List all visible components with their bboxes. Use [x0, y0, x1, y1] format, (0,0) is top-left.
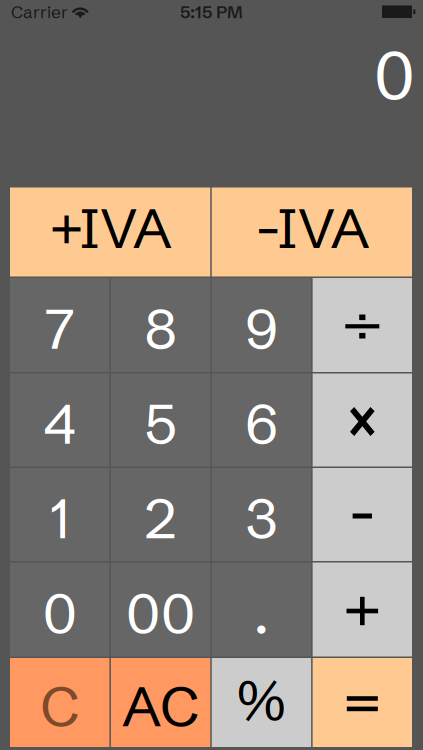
staticText: 4 [43, 389, 76, 458]
button[interactable]: % [212, 658, 311, 747]
button[interactable]: 5 [111, 373, 210, 466]
staticText: 9 [245, 294, 278, 363]
button[interactable]: AC [111, 658, 210, 747]
staticText: 1 [50, 483, 69, 552]
button[interactable]: . [212, 562, 311, 656]
button[interactable]: 00 [111, 562, 210, 656]
button[interactable]: Multiply [313, 373, 412, 466]
staticText: 8 [145, 294, 177, 363]
staticText: 7 [45, 294, 75, 363]
button[interactable]: 9 [212, 278, 311, 372]
button[interactable]: +IVA [10, 187, 210, 276]
staticText: -IVA [254, 193, 369, 262]
staticText: AC [122, 671, 199, 740]
button[interactable]: Plus [313, 562, 412, 656]
staticText: 0 [43, 578, 77, 647]
button[interactable]: Minus [313, 468, 412, 561]
staticText: C [40, 671, 79, 740]
button[interactable]: 4 [10, 373, 109, 466]
button[interactable]: 8 [111, 278, 210, 372]
button[interactable]: -IVA [212, 187, 412, 276]
button[interactable]: 1 [10, 468, 109, 561]
button[interactable]: 0 [10, 562, 109, 656]
staticText: 00 [126, 578, 195, 647]
staticText: 5 [145, 389, 177, 458]
staticText: % [237, 665, 285, 734]
button[interactable]: 6 [212, 373, 311, 466]
button[interactable]: Equals [313, 658, 412, 747]
button[interactable]: 2 [111, 468, 210, 561]
staticText: 3 [245, 483, 277, 552]
staticText: 5:15 PM [180, 1, 243, 23]
staticText: 6 [245, 389, 278, 458]
button[interactable]: Divide [313, 278, 412, 372]
staticText: Carrier [11, 1, 68, 23]
staticText: 0 [374, 34, 415, 116]
button[interactable]: C [10, 658, 109, 747]
staticText: 2 [145, 483, 177, 552]
staticText: . [253, 578, 269, 647]
staticText: +IVA [49, 193, 172, 262]
button[interactable]: 7 [10, 278, 109, 372]
button[interactable]: 3 [212, 468, 311, 561]
